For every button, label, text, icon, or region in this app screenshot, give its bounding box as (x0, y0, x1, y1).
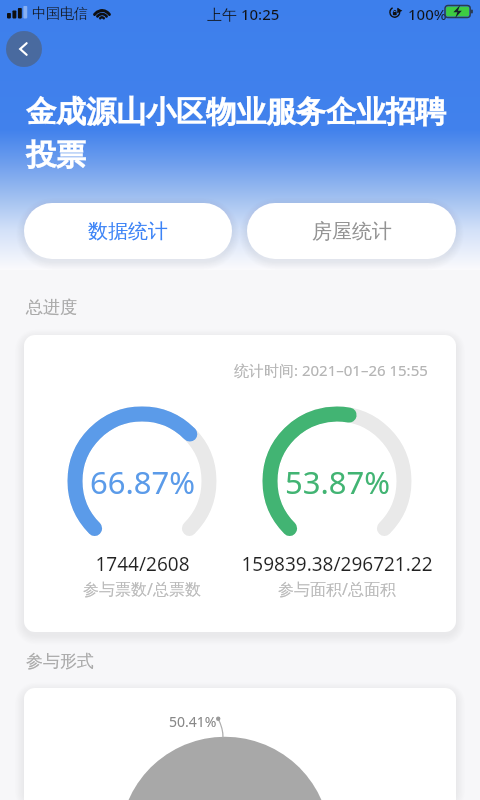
staticText: 参与形式 (26, 651, 94, 672)
staticText: 参与票数/总票数 (83, 578, 201, 600)
staticText: 53.87% (285, 461, 390, 503)
staticText: 66.87% (90, 461, 195, 503)
staticText: 中国电信 (32, 5, 88, 23)
button[interactable]: Back (6, 31, 42, 67)
staticText: 房屋统计 (312, 219, 392, 244)
staticText: 上午 10:25 (207, 4, 280, 24)
button[interactable]: 房屋统计 (247, 203, 456, 259)
staticText: 统计时间: 2021–01–26 15:55 (234, 360, 428, 380)
staticText: 数据统计 (88, 219, 168, 244)
staticText: 159839.38/296721.22 (241, 551, 433, 577)
staticText: 参与面积/总面积 (278, 578, 396, 600)
staticText: 50.41% (169, 712, 217, 731)
staticText: 1744/2608 (95, 551, 190, 577)
staticText: 100% (408, 4, 447, 24)
button[interactable]: 数据统计 (24, 203, 232, 259)
staticText: 总进度 (26, 297, 77, 318)
staticText: 金成源山小区物业服务企业招聘投票 (26, 93, 454, 174)
